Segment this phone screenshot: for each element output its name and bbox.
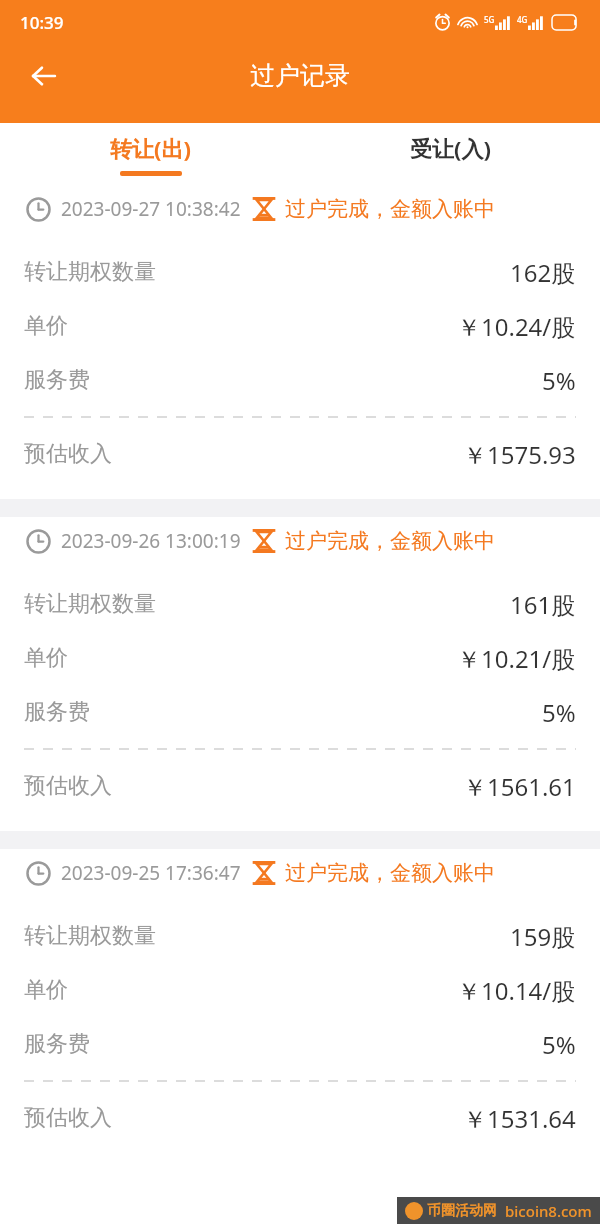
staticText: 159股 [510,920,576,953]
staticText: 单价 [24,976,68,1004]
staticText: ￥1531.64 [463,1102,576,1135]
staticText: ￥10.24/股 [457,310,576,343]
staticText: ￥1575.93 [463,438,576,471]
staticText: bicoin8.com [505,1201,592,1221]
staticText: 5G [484,14,495,25]
staticText: 10:39 [20,11,64,34]
staticText: 转让期权数量 [24,258,156,286]
staticText: 币圈活动网 [427,1202,497,1220]
staticText: 2023-09-26 13:00:19 [61,528,241,554]
staticText: 5% [542,696,576,729]
staticText: 转让期权数量 [24,922,156,950]
staticText: ￥1561.61 [463,770,576,803]
staticText: ￥10.21/股 [457,642,576,675]
button[interactable]: Back [20,52,68,100]
staticText: 服务费 [24,366,90,394]
staticText: 受让(入) [410,133,491,163]
staticText: 单价 [24,312,68,340]
staticText: 单价 [24,644,68,672]
staticText: 过户完成，金额入账中 [285,528,495,554]
staticText: 服务费 [24,698,90,726]
staticText: 转让(出) [110,133,191,163]
button[interactable]: 2023-09-26 13:00:19 [0,517,600,831]
staticText: 4G [517,14,528,25]
staticText: 预估收入 [24,772,112,800]
staticText: 过户记录 [250,60,350,91]
staticText: 2023-09-27 10:38:42 [61,196,241,222]
staticText: 2023-09-25 17:36:47 [61,860,241,886]
staticText: 预估收入 [24,440,112,468]
staticText: 服务费 [24,1030,90,1058]
staticText: 5% [542,1028,576,1061]
button[interactable]: 转让(出) [0,123,300,185]
staticText: 162股 [510,256,576,289]
staticText: 161股 [510,588,576,621]
staticText: ￥10.14/股 [457,974,576,1007]
staticText: 过户完成，金额入账中 [285,860,495,886]
staticText: 预估收入 [24,1104,112,1132]
button[interactable]: 2023-09-25 17:36:47 [0,849,600,1163]
staticText: 过户完成，金额入账中 [285,196,495,222]
staticText: 转让期权数量 [24,590,156,618]
button[interactable]: 2023-09-27 10:38:42 [0,185,600,499]
button[interactable]: 受让(入) [300,123,600,185]
staticText: 5% [542,364,576,397]
